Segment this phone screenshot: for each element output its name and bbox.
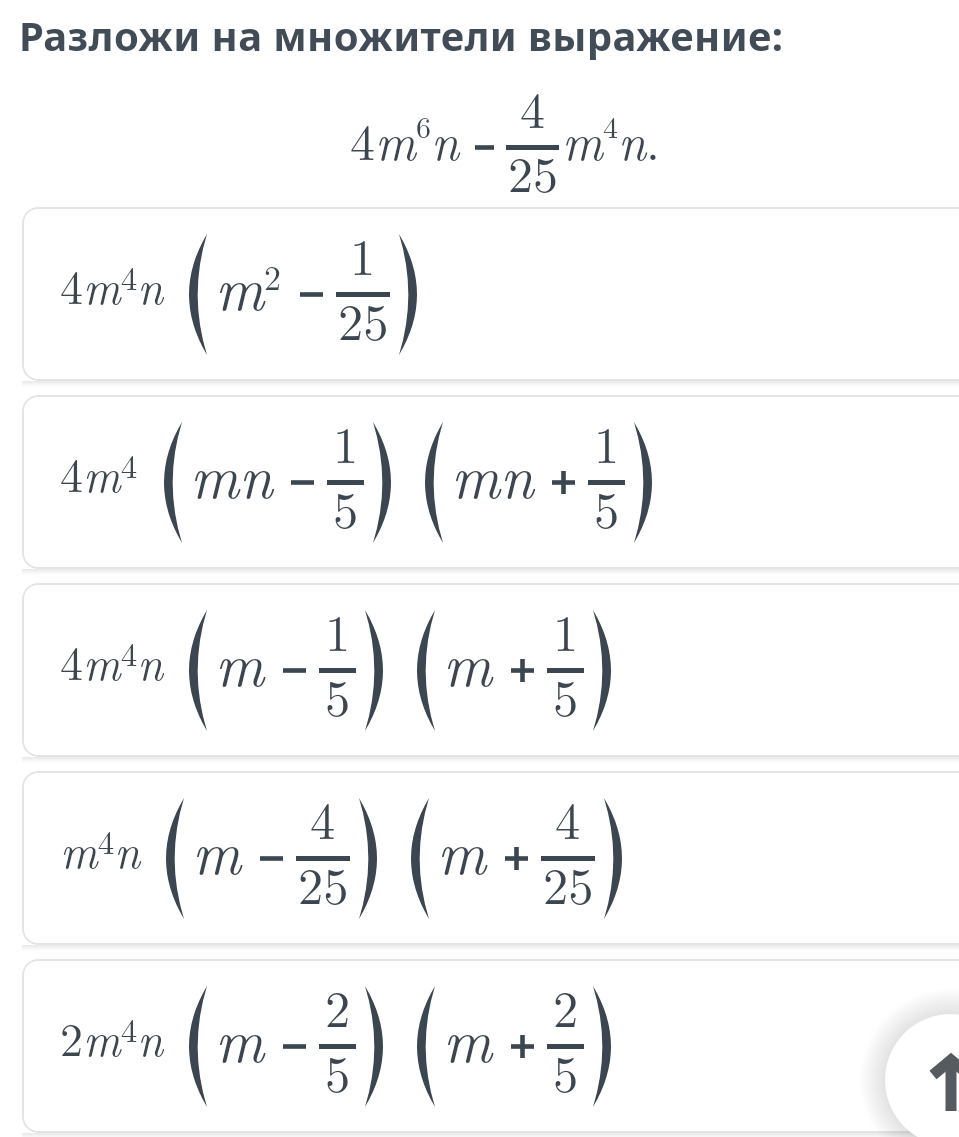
staticText: m — [215, 994, 265, 1079]
button[interactable]: 4m4n — [22, 207, 959, 381]
staticText: 4m6n — [350, 104, 459, 175]
staticText: m2 — [215, 242, 282, 327]
staticText: mn — [190, 430, 273, 515]
staticText: 5 — [553, 659, 579, 731]
staticText: 2 — [325, 970, 351, 1042]
staticText: 1 — [325, 594, 351, 666]
staticText: 25 — [543, 847, 594, 919]
staticText: 2m4n — [60, 1004, 163, 1069]
staticText: 5 — [553, 1035, 579, 1107]
staticText: 1 — [594, 406, 620, 478]
staticText: 1 — [350, 218, 376, 290]
staticText: m4n — [60, 816, 140, 881]
staticText: 4m4 — [60, 440, 138, 505]
staticText: 5 — [333, 471, 359, 543]
staticText: 25 — [338, 283, 389, 355]
staticText: 5 — [594, 471, 620, 543]
staticText: 4 — [310, 782, 336, 854]
button[interactable]: 4m4 — [22, 395, 959, 569]
staticText: m — [192, 806, 242, 891]
staticText: m — [443, 618, 493, 703]
staticText: mn — [451, 430, 534, 515]
staticText: m — [215, 618, 265, 703]
staticText: m — [437, 806, 487, 891]
staticText: 4 — [555, 782, 581, 854]
staticText: 4m4n — [60, 628, 163, 693]
button[interactable]: m4n — [22, 771, 959, 945]
staticText: 25 — [508, 136, 558, 207]
staticText: 1 — [333, 406, 359, 478]
staticText: m4n. — [562, 104, 660, 175]
staticText: 5 — [325, 1035, 351, 1107]
staticText: 1 — [553, 594, 579, 666]
staticText: Разложи на множители выражение: — [19, 8, 784, 62]
button[interactable]: 4m4n — [22, 583, 959, 757]
staticText: m — [443, 994, 493, 1079]
staticText: 5 — [325, 659, 351, 731]
button[interactable]: 2m4n — [22, 959, 959, 1133]
staticText: 25 — [298, 847, 349, 919]
staticText: 4m4n — [60, 252, 163, 317]
staticText: 2 — [553, 970, 579, 1042]
staticText: 4 — [520, 72, 545, 143]
button[interactable] — [885, 1014, 959, 1137]
